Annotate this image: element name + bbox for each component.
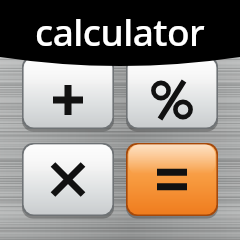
- button[interactable]: [0, 0, 240, 240]
- other: Calculator keypad: [0, 0, 240, 240]
